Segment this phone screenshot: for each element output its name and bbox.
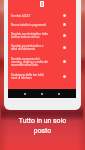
staticText: roaming, sharing e scelta dei bbox=[11, 60, 48, 63]
button[interactable]: Servizio amministrativo fatto bbox=[8, 29, 76, 41]
staticText: traffico inclusa nel tuo bbox=[11, 35, 40, 38]
staticText: Assistenza dello tuo tutti i bbox=[11, 73, 45, 76]
other: Dettagli bbox=[63, 14, 66, 17]
staticText: Bonus turistici e pagamenti bbox=[11, 23, 47, 26]
button[interactable]: Servizio compreso dei bbox=[8, 53, 76, 70]
staticText: Tutto in un solo posto bbox=[0, 117, 85, 135]
staticText: novembre attivo lista bbox=[11, 63, 38, 66]
button[interactable]: Servizio amministrativo e bbox=[8, 41, 76, 53]
staticText: mesi di telefono bbox=[11, 76, 32, 79]
other: Dettagli bbox=[63, 75, 66, 78]
button[interactable]: Bonus turistici e pagamenti bbox=[8, 20, 76, 29]
other: Dettagli bbox=[63, 34, 66, 37]
button[interactable]: Servizio ACI/LT bbox=[8, 11, 76, 20]
staticText: attivi dell'abbonato bbox=[11, 47, 36, 50]
staticText: Servizio ACI/LT bbox=[11, 14, 31, 17]
button[interactable]: Assistenza dello tuo tutti i bbox=[8, 70, 76, 82]
staticText: Servizio amministrativo e bbox=[11, 44, 44, 47]
staticText: Servizio compreso dei bbox=[11, 57, 40, 60]
other: Dettagli bbox=[63, 46, 66, 49]
other: Dettagli bbox=[63, 60, 66, 63]
staticText: Servizio amministrativo fatto bbox=[11, 32, 48, 35]
other: Dettagli bbox=[63, 23, 66, 26]
